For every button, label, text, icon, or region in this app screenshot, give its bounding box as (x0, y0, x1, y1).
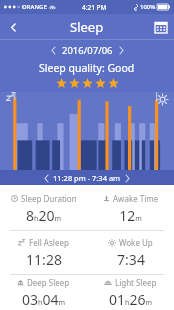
button[interactable]: 2016/07/06 (51, 44, 124, 57)
button[interactable]: Sleep Duration (0, 187, 87, 230)
button[interactable]: Woke Up (87, 231, 174, 274)
button[interactable]: Light Sleep (87, 275, 174, 310)
staticText: 100% (140, 3, 156, 11)
staticText: Woke Up (119, 237, 153, 248)
button[interactable]: 11:28 pm - 7:34 am (0, 170, 174, 185)
staticText: Sleep Duration (21, 193, 77, 204)
staticText: 8h20m (26, 206, 61, 225)
staticText: 11:28 pm - 7:34 am (53, 173, 121, 183)
staticText: Sleep (70, 18, 104, 36)
staticText: Fell Asleep (29, 237, 69, 248)
staticText: 01h26m (109, 290, 152, 309)
staticText: ORANGE (22, 3, 47, 11)
staticText: 4:21 PM (82, 3, 107, 12)
staticText: 2016/07/06 (62, 44, 113, 57)
staticText: Sleep quality: Good (39, 61, 135, 75)
button[interactable]: Fell Asleep (0, 231, 87, 274)
staticText: 12m (119, 206, 142, 225)
staticText: Awake Time (113, 193, 159, 204)
button[interactable]: Awake Time (87, 187, 174, 230)
staticText: Light Sleep (115, 277, 157, 288)
staticText: 11:28 (26, 250, 62, 269)
button[interactable]: Deep Sleep (0, 275, 87, 310)
staticText: 7:34 (117, 250, 145, 269)
staticText: 03h04m (22, 290, 65, 309)
button[interactable]: Calendar (148, 14, 174, 40)
staticText: Deep Sleep (27, 277, 70, 288)
button[interactable]: Back (0, 14, 26, 40)
